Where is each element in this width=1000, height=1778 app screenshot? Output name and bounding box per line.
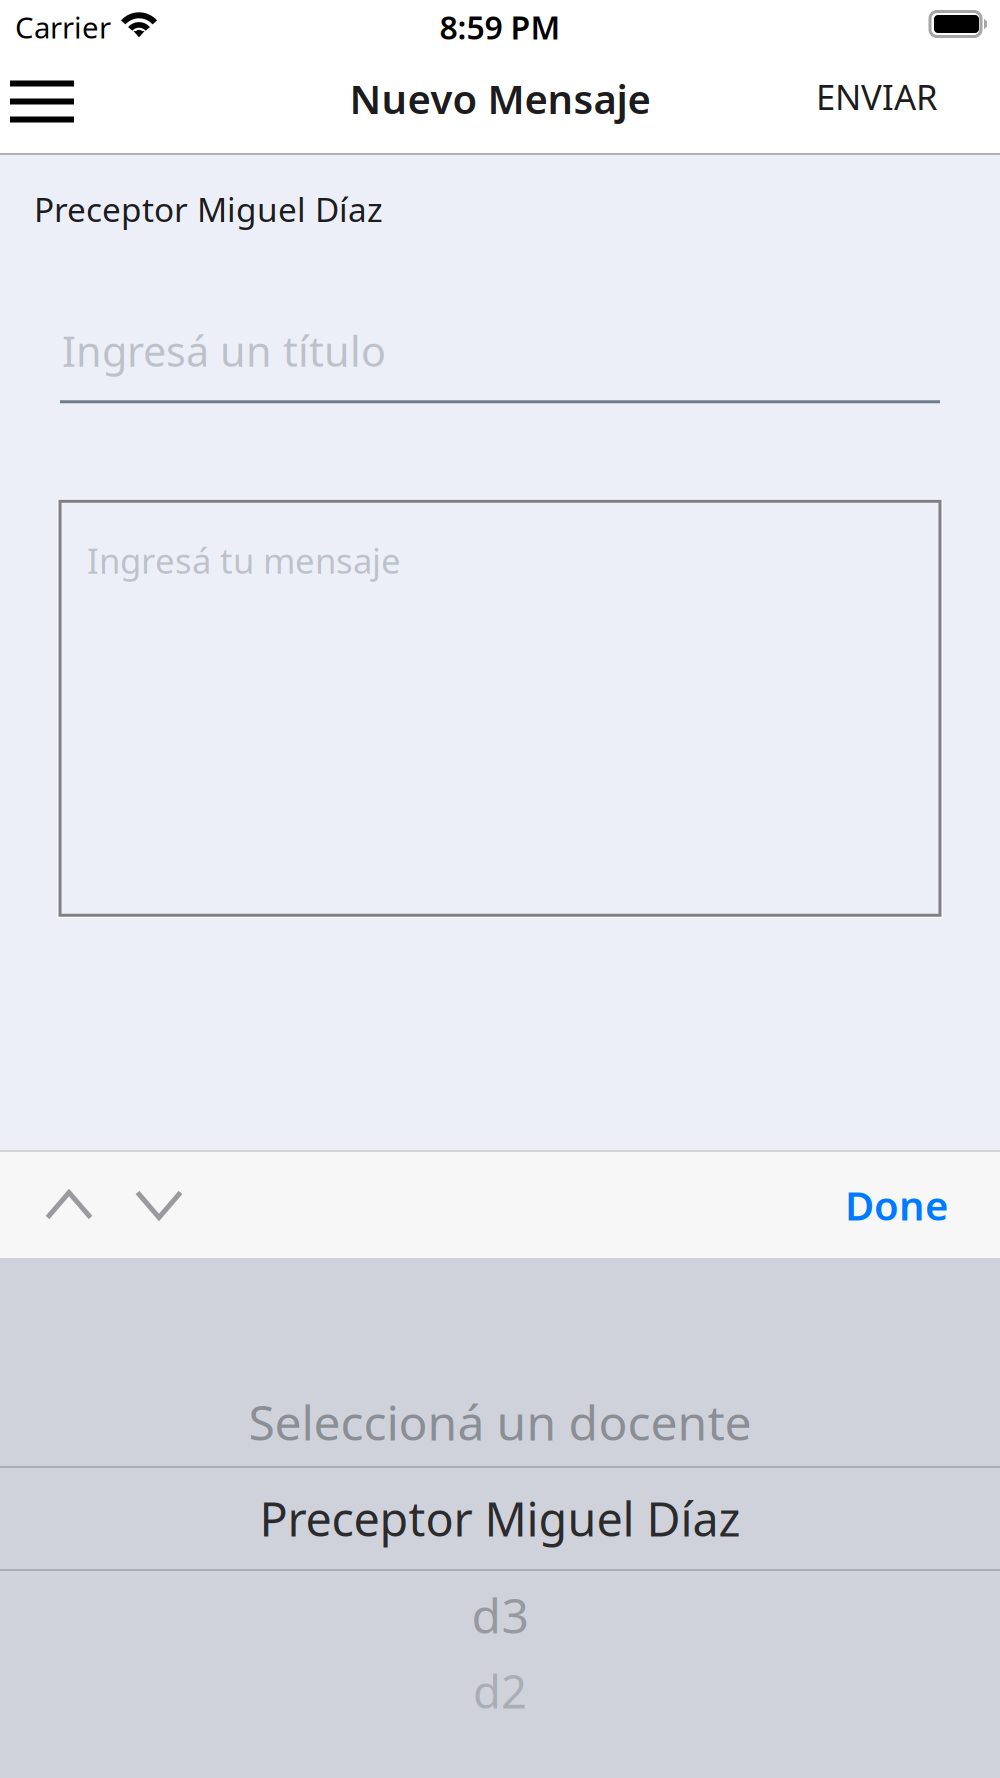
staticText: Preceptor Miguel Díaz xyxy=(259,1487,740,1549)
button[interactable]: Done xyxy=(819,1152,974,1258)
staticText: d3 xyxy=(471,1583,528,1647)
button[interactable]: ENVIAR xyxy=(796,59,958,147)
staticText: ENVIAR xyxy=(816,73,938,119)
staticText: Carrier xyxy=(15,7,111,46)
staticText: Done xyxy=(845,1178,948,1231)
staticText: d2 xyxy=(473,1661,527,1721)
button[interactable]: Previous field xyxy=(24,1152,114,1258)
staticText: 8:59 PM xyxy=(439,6,560,48)
staticText: Nuevo Mensaje xyxy=(349,72,650,125)
staticText: Ingresá un título xyxy=(62,323,386,378)
staticText: Preceptor Miguel Díaz xyxy=(34,187,383,231)
button[interactable]: Menu xyxy=(0,59,84,147)
staticText: Seleccioná un docente xyxy=(248,1390,751,1454)
staticText: Ingresá tu mensaje xyxy=(87,537,401,583)
button[interactable]: Next field xyxy=(114,1152,204,1258)
